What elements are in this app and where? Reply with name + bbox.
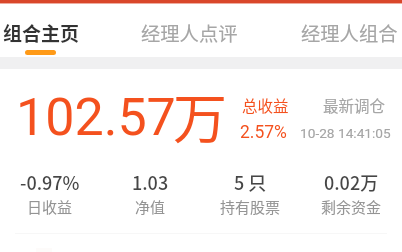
button[interactable]: -0.97% (0, 169, 100, 229)
staticText: 组合主页 (3, 19, 80, 47)
staticText: -0.97% (20, 169, 80, 195)
staticText: 10-28 14:41:05 (300, 125, 391, 141)
staticText: 经理人点评 (141, 19, 238, 47)
button[interactable]: 经理人组合 (268, 0, 402, 57)
button[interactable]: 0.02万 (301, 169, 402, 229)
staticText: 万 (173, 76, 227, 154)
button[interactable]: 经理人点评 (134, 0, 268, 57)
button[interactable]: 102.57 (0, 69, 402, 169)
staticText: 102.57 (16, 87, 176, 148)
button[interactable]: 1.03 (100, 169, 200, 229)
staticText: 日收益 (27, 196, 73, 218)
staticText: 2.57% (240, 122, 287, 143)
staticText: 0.02万 (324, 169, 379, 195)
staticText: 持有股票 (220, 196, 281, 218)
staticText: 剩余资金 (321, 196, 382, 218)
staticText: 5 只 (234, 169, 267, 195)
button[interactable]: 5 只 (200, 169, 301, 229)
button[interactable]: 组合主页 (0, 0, 134, 57)
staticText: 总收益 (242, 94, 289, 116)
staticText: 净值 (135, 196, 166, 218)
staticText: 经理人组合 (301, 19, 398, 47)
staticText: 最新调仓 (323, 94, 386, 116)
staticText: 1.03 (132, 169, 169, 195)
